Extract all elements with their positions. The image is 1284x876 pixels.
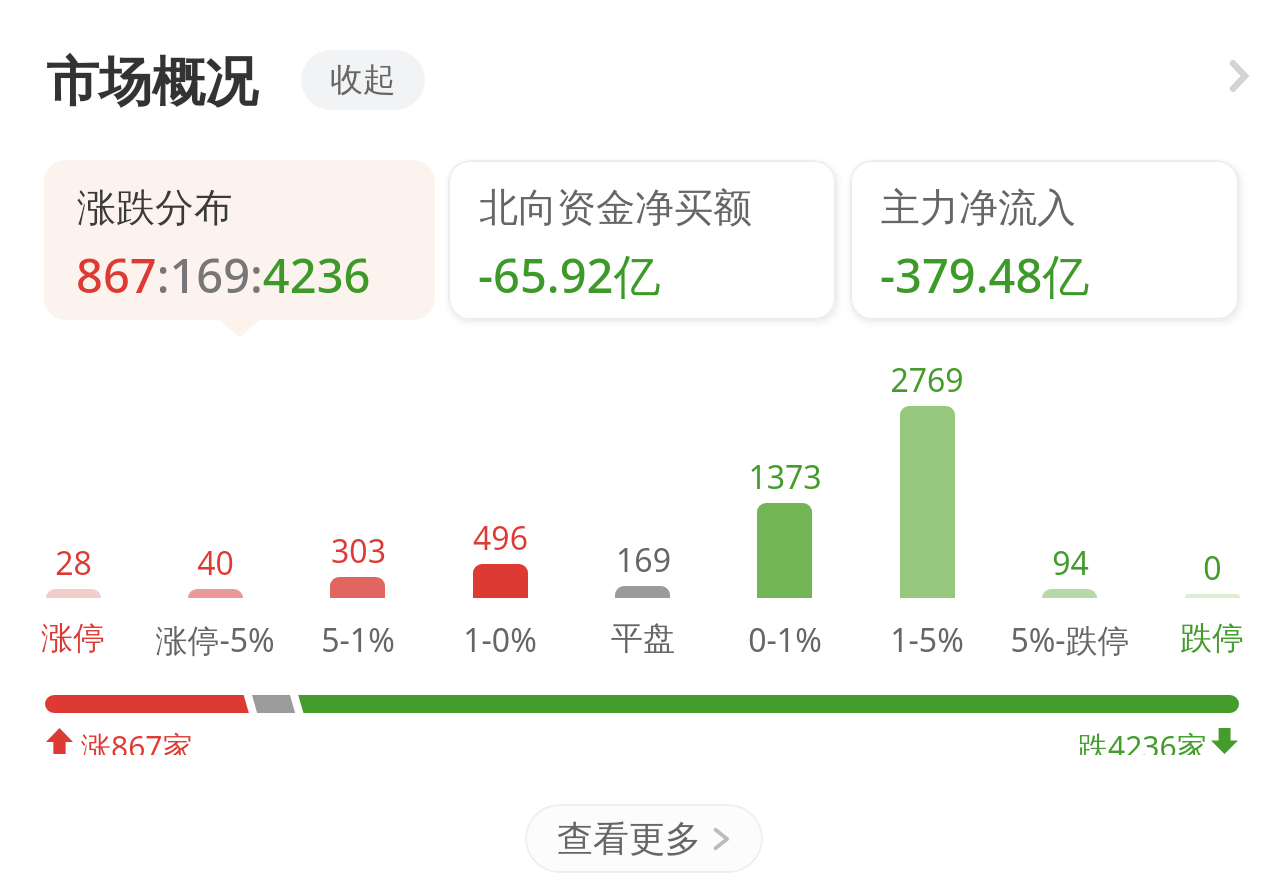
button[interactable]: 涨跌分布 [44,160,435,320]
staticText: 1373 [748,455,822,499]
staticText: 1-0% [463,618,537,662]
staticText: -379.48亿 [880,243,1090,307]
button[interactable]: 1-0% 496 [429,360,571,655]
button[interactable]: 5-1% 303 [287,360,429,655]
button[interactable]: 查看市场概况详情 [1198,36,1278,116]
button[interactable]: 5%-跌停 94 [999,360,1141,655]
staticText: 169 [616,538,671,582]
staticText: 303 [331,529,386,573]
staticText: 5%-跌停 [1010,618,1130,662]
button[interactable]: 1-5% 2769 [856,360,998,655]
staticText: 28 [55,541,92,585]
staticText: 跌停 [1180,618,1244,658]
staticText: 涨停 [41,618,105,658]
button[interactable]: 平盘 169 [572,360,714,655]
staticText: 0-1% [748,618,822,662]
staticText: 1-5% [890,618,964,662]
staticText: 跌4236家 [1078,726,1207,755]
staticText: 北向资金净买额 [479,183,752,232]
staticText: 查看更多 [557,816,701,861]
staticText: -65.92亿 [478,243,661,307]
staticText: 94 [1052,541,1089,585]
staticText: 涨停-5% [155,618,275,662]
staticText: 涨跌分布 [77,183,233,232]
button[interactable]: 涨停-5% 40 [144,360,286,655]
staticText: 市场概况 [46,49,258,116]
staticText: 2769 [890,358,964,402]
staticText: 496 [473,516,528,560]
button[interactable]: 涨跌家数比例 [45,695,1239,713]
staticText: 0 [1203,546,1222,590]
button[interactable]: 北向资金净买额 [448,160,836,320]
button[interactable]: 查看更多 [525,804,763,873]
staticText: 主力净流入 [881,183,1076,232]
staticText: 收起 [330,59,396,101]
button[interactable]: 收起 [301,50,425,110]
staticText: 867:169:4236 [76,243,371,307]
button[interactable]: 0-1% 1373 [714,360,856,655]
button[interactable]: 主力净流入 [850,160,1239,320]
staticText: 5-1% [321,618,395,662]
staticText: 平盘 [611,618,675,658]
button[interactable]: 跌停 0 [1141,360,1283,655]
staticText: 40 [197,541,234,585]
button[interactable]: 涨停 28 [2,360,144,655]
staticText: 涨867家 [81,726,193,755]
